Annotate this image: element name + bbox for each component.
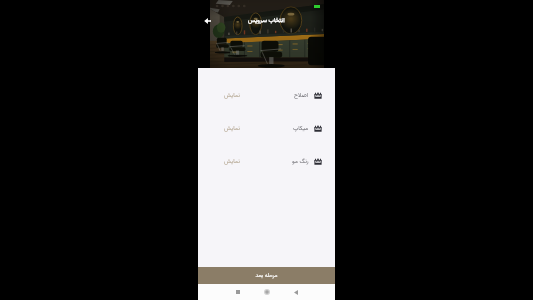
staticText: انتخاب سرویس <box>248 16 285 25</box>
button[interactable]: نمایش <box>198 145 335 178</box>
button[interactable]: Back <box>199 13 215 29</box>
staticText: میکاپ <box>293 124 309 133</box>
staticText: اصلاح <box>294 91 309 100</box>
button[interactable]: نمایش <box>198 79 335 112</box>
button[interactable]: Recent apps <box>232 286 244 298</box>
staticText: نمایش <box>224 91 241 100</box>
button[interactable]: نمایش <box>198 112 335 145</box>
staticText: نمایش <box>224 124 241 133</box>
button[interactable]: مرحله بعد <box>198 267 335 284</box>
button[interactable]: Home <box>261 286 273 298</box>
button[interactable]: Back <box>290 286 302 298</box>
staticText: نمایش <box>224 157 241 166</box>
staticText: مرحله بعد <box>255 271 278 280</box>
staticText: رنگ مو <box>292 157 309 166</box>
